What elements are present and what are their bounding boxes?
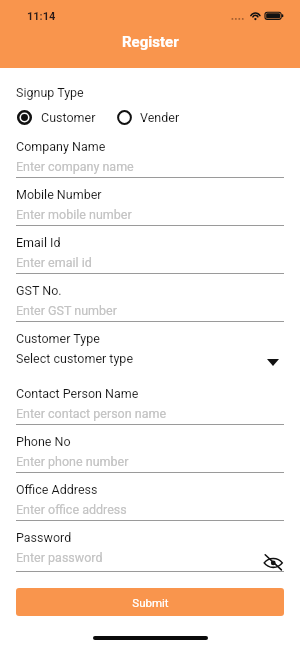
button[interactable]: Vender <box>116 109 180 126</box>
staticText: Customer Type <box>16 331 100 346</box>
button[interactable]: Customer <box>16 109 96 126</box>
button[interactable]: Show password <box>263 552 285 571</box>
button[interactable]: Phone No <box>16 425 284 473</box>
staticText: Office Address <box>16 482 98 497</box>
staticText: Register <box>122 33 179 51</box>
button[interactable]: GST No. <box>16 274 284 322</box>
staticText: Vender <box>140 110 180 125</box>
staticText: Enter mobile number <box>16 207 132 222</box>
button[interactable]: Office Address <box>16 473 284 521</box>
staticText: Enter contact person name <box>16 406 167 421</box>
staticText: Email Id <box>16 235 61 250</box>
staticText: Customer <box>41 110 96 125</box>
button[interactable]: Password <box>16 521 284 572</box>
staticText: Company Name <box>16 139 106 154</box>
staticText: Mobile Number <box>16 187 102 202</box>
staticText: Phone No <box>16 434 71 449</box>
button[interactable]: Mobile Number <box>16 178 284 226</box>
staticText: Contact Person Name <box>16 386 139 401</box>
staticText: GST No. <box>16 283 62 298</box>
staticText: Enter phone number <box>16 454 129 469</box>
staticText: Enter company name <box>16 159 134 174</box>
staticText: Signup Type <box>16 85 84 100</box>
button[interactable]: Submit <box>16 588 284 616</box>
staticText: Enter GST number <box>16 303 117 318</box>
button[interactable]: Contact Person Name <box>16 377 284 425</box>
button[interactable]: Customer Type <box>16 322 284 377</box>
staticText: Enter email id <box>16 255 92 270</box>
button[interactable]: Email Id <box>16 226 284 274</box>
button[interactable]: Company Name <box>16 130 284 178</box>
staticText: Enter password <box>16 550 103 565</box>
staticText: Password <box>16 530 72 545</box>
staticText: Enter office address <box>16 502 127 517</box>
staticText: Select customer type <box>16 351 134 366</box>
staticText: 11:14 <box>27 10 56 23</box>
staticText: Submit <box>132 596 169 609</box>
